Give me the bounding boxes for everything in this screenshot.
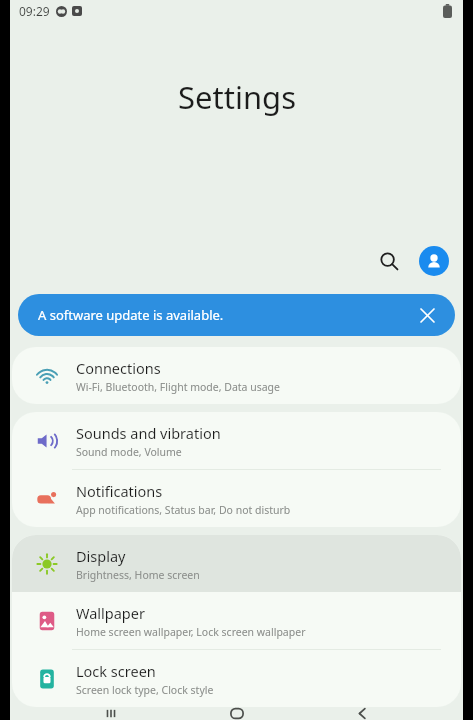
staticText: Connections <box>76 358 161 378</box>
button[interactable]: Account <box>419 246 449 276</box>
button[interactable]: Recents <box>87 707 135 720</box>
button[interactable]: A software update is available. <box>18 294 455 336</box>
staticText: Wi-Fi, Bluetooth, Flight mode, Data usag… <box>76 380 281 394</box>
button[interactable]: Search <box>369 241 409 281</box>
staticText: Sound mode, Volume <box>76 445 182 459</box>
button[interactable]: Lock screen <box>12 650 461 707</box>
button[interactable]: Back <box>338 707 386 720</box>
button[interactable]: Notifications <box>12 470 461 527</box>
button[interactable]: Home <box>213 707 261 720</box>
button[interactable]: Sounds and vibration <box>12 412 461 469</box>
staticText: 09:29 <box>19 3 50 19</box>
staticText: Lock screen <box>76 661 156 681</box>
staticText: Screen lock type, Clock style <box>76 683 214 697</box>
staticText: Wallpaper <box>76 603 145 623</box>
staticText: Display <box>76 546 126 566</box>
button[interactable]: Dismiss <box>415 303 439 327</box>
button[interactable]: Wallpaper <box>12 592 461 649</box>
button[interactable]: Display <box>12 535 461 592</box>
staticText: A software update is available. <box>38 306 224 324</box>
staticText: Brightness, Home screen <box>76 568 200 582</box>
button[interactable]: Connections <box>12 347 461 404</box>
staticText: Sounds and vibration <box>76 423 221 443</box>
staticText: Settings <box>178 76 296 118</box>
staticText: App notifications, Status bar, Do not di… <box>76 503 291 517</box>
staticText: Home screen wallpaper, Lock screen wallp… <box>76 625 306 639</box>
staticText: Notifications <box>76 481 163 501</box>
